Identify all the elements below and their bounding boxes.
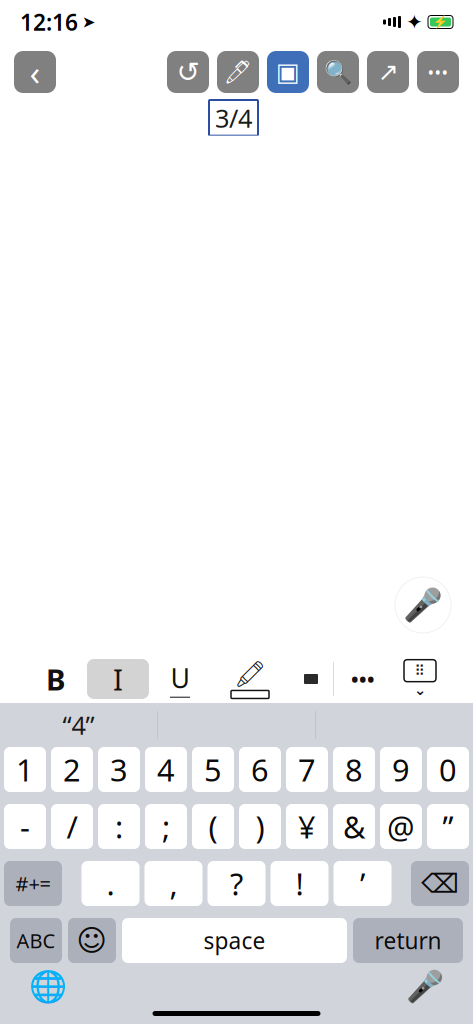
staticText: ••• [427, 60, 448, 83]
staticText: 12:16 [20, 7, 78, 37]
staticText: U [170, 660, 189, 696]
button[interactable]: . [81, 861, 139, 906]
staticText: ? [230, 863, 243, 904]
staticText: : [115, 806, 123, 847]
staticText: 9 [392, 749, 410, 790]
staticText: ↺ [176, 56, 199, 88]
button[interactable]: space [122, 918, 347, 963]
button[interactable]: Share [367, 51, 409, 93]
staticText: 🎤 [406, 969, 444, 1004]
staticText: B [46, 659, 66, 698]
button[interactable]: 8 [333, 747, 375, 792]
staticText: 🖍 [234, 659, 266, 688]
button[interactable]: / [51, 804, 93, 849]
button[interactable]: Dictation [395, 965, 455, 1009]
button[interactable]: 9 [380, 747, 422, 792]
staticText: - [20, 806, 30, 847]
button[interactable]: ¥ [286, 804, 328, 849]
button[interactable]: - [4, 804, 46, 849]
staticText: #+= [15, 870, 50, 897]
staticText: ••• [351, 666, 375, 692]
button[interactable]: Next keyboard [18, 965, 78, 1009]
staticText: ⌫ [421, 868, 459, 899]
button[interactable]: ’ [333, 861, 391, 906]
staticText: 1 [16, 749, 34, 790]
staticText: 8 [345, 749, 363, 790]
staticText: ⚡ [433, 15, 448, 29]
button[interactable]: Delete [411, 861, 469, 906]
button[interactable]: “4” [0, 703, 157, 747]
button[interactable]: Back [14, 51, 56, 93]
button[interactable]: #+= [4, 861, 62, 906]
button[interactable]: & [333, 804, 375, 849]
staticText: ! [295, 863, 303, 904]
button[interactable]: Hide keyboard [392, 658, 448, 700]
button[interactable]: Dictate [395, 577, 451, 633]
button[interactable]: 0 [427, 747, 469, 792]
staticText: ↗ [377, 58, 398, 86]
button[interactable]: Crop [267, 51, 309, 93]
staticText: ) [255, 806, 264, 847]
button[interactable]: ) [239, 804, 281, 849]
staticText: / [66, 806, 77, 847]
staticText: 6 [251, 749, 269, 790]
button[interactable]: More [417, 51, 459, 93]
staticText: return [374, 925, 441, 955]
staticText: 3 [110, 749, 128, 790]
staticText: 0 [439, 749, 457, 790]
staticText: ’ [360, 863, 365, 904]
button[interactable]: ABC [10, 918, 62, 963]
button[interactable]: ; [145, 804, 187, 849]
button[interactable]: Color [289, 659, 333, 699]
staticText: ☺ [76, 924, 107, 957]
staticText: I [113, 659, 123, 698]
button[interactable]: 7 [286, 747, 328, 792]
button[interactable]: Underline [149, 659, 211, 699]
staticText: ⌄ [414, 682, 426, 698]
button[interactable]: Italic [87, 659, 149, 699]
button[interactable]: @ [380, 804, 422, 849]
staticText: @ [387, 806, 415, 847]
staticText: 🌐 [29, 969, 67, 1004]
staticText: “4” [62, 708, 94, 742]
button[interactable]: Undo [167, 51, 209, 93]
staticText: ➤ [82, 13, 95, 31]
staticText: 4 [157, 749, 175, 790]
button[interactable]: ( [192, 804, 234, 849]
button[interactable]: 3 [98, 747, 140, 792]
button[interactable]: Search [317, 51, 359, 93]
button[interactable]: Highlight [211, 658, 289, 700]
button[interactable]: ! [270, 861, 328, 906]
staticText: ; [162, 806, 170, 847]
staticText: ⠿ [414, 662, 425, 679]
staticText: 2 [63, 749, 81, 790]
button[interactable]: ? [207, 861, 265, 906]
button[interactable]: return [353, 918, 463, 963]
button[interactable]: Markup [217, 51, 259, 93]
button[interactable]: 2 [51, 747, 93, 792]
staticText: ▣ [276, 58, 300, 86]
staticText: 5 [204, 749, 222, 790]
staticText: ABC [16, 927, 55, 954]
staticText: ( [208, 806, 217, 847]
staticText: 🖊 [223, 59, 252, 85]
staticText: space [203, 925, 265, 955]
staticText: . [106, 863, 114, 904]
button[interactable]: Bold [25, 659, 87, 699]
staticText: , [169, 863, 177, 904]
button[interactable]: : [98, 804, 140, 849]
button[interactable]: More formatting [334, 659, 392, 699]
staticText: & [343, 806, 365, 847]
button[interactable]: 1 [4, 747, 46, 792]
button[interactable]: 6 [239, 747, 281, 792]
button[interactable]: 5 [192, 747, 234, 792]
button[interactable]: ” [427, 804, 469, 849]
button[interactable]: Emoji [68, 918, 116, 963]
button[interactable]: , [144, 861, 202, 906]
button[interactable]: 4 [145, 747, 187, 792]
staticText: 7 [298, 749, 316, 790]
staticText: ” [442, 806, 453, 847]
staticText: ¥ [298, 806, 316, 847]
